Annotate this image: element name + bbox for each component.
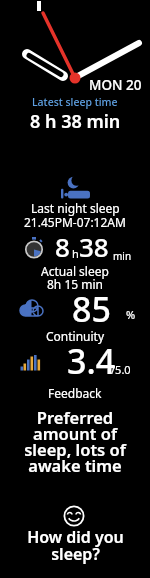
staticText: 3.4 <box>67 338 116 384</box>
button[interactable]: Latest sleep time <box>32 95 118 109</box>
staticText: Continuity <box>46 328 105 344</box>
button[interactable] <box>19 294 135 322</box>
staticText: 8h 15 min <box>47 276 103 292</box>
staticText: Actual sleep <box>41 263 109 279</box>
staticText: h <box>72 246 79 261</box>
button[interactable]: How did you sleep? <box>27 526 124 564</box>
staticText: 38 <box>79 229 109 264</box>
staticText: Last night sleep <box>31 200 120 216</box>
staticText: min <box>113 249 132 263</box>
staticText: Feedback <box>48 385 102 401</box>
staticText: Preferred amount of sleep, lots of awake… <box>24 406 126 476</box>
button[interactable] <box>20 234 132 264</box>
button[interactable] <box>63 505 85 527</box>
staticText: MON 20 <box>89 76 142 94</box>
staticText: % <box>126 307 136 322</box>
staticText: 21.45PM-07:12AM <box>24 214 126 230</box>
staticText: 85 <box>72 286 111 332</box>
button[interactable] <box>19 348 135 376</box>
staticText: 8 h 38 min <box>30 109 121 134</box>
staticText: 8 <box>55 229 70 264</box>
staticText: /5.0 <box>111 362 131 377</box>
